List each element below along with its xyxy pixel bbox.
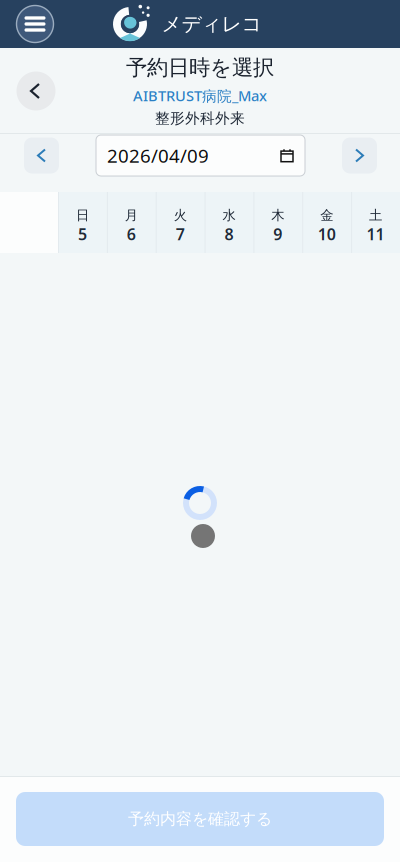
- button[interactable]: Menu: [13, 2, 57, 46]
- staticText: 11: [366, 223, 384, 245]
- staticText: AIBTRUST病院_Max: [133, 86, 267, 105]
- button[interactable]: Back: [14, 69, 58, 113]
- staticText: 月: [125, 207, 138, 223]
- staticText: 日: [76, 207, 89, 223]
- button[interactable]: 予約内容を確認する: [16, 792, 384, 846]
- staticText: 火: [174, 207, 187, 223]
- staticText: 8: [224, 223, 233, 245]
- staticText: 2026/04/09: [107, 143, 209, 168]
- staticText: 予約日時を選択: [126, 55, 274, 81]
- staticText: 木: [271, 207, 284, 223]
- staticText: 予約内容を確認する: [128, 809, 272, 829]
- button[interactable]: Next day: [342, 137, 377, 173]
- staticText: 土: [369, 207, 382, 223]
- staticText: 10: [318, 223, 336, 245]
- button[interactable]: Previous day: [24, 137, 59, 173]
- staticText: 整形外科外来: [155, 109, 245, 127]
- staticText: 6: [127, 223, 136, 245]
- staticText: メディレコ: [161, 12, 261, 36]
- staticText: 水: [222, 207, 235, 223]
- staticText: 7: [176, 223, 185, 245]
- staticText: 5: [78, 223, 87, 245]
- staticText: 金: [320, 207, 333, 223]
- staticText: 9: [273, 223, 282, 245]
